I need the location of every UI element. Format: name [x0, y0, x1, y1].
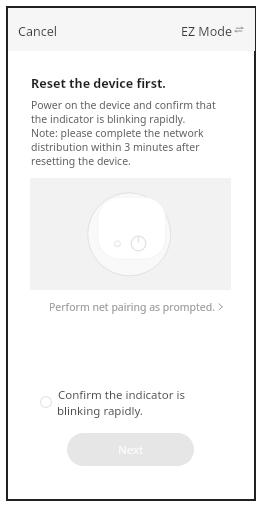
button[interactable]: Confirm the indicator is: [36, 384, 196, 420]
staticText: Power on the device and confirm that: [31, 98, 216, 112]
button[interactable]: Cancel: [8, 12, 68, 45]
staticText: Note: please complete the network: [31, 126, 204, 140]
staticText: Cancel: [18, 23, 57, 40]
staticText: Confirm the indicator is: [58, 387, 185, 403]
staticText: Next: [118, 442, 144, 458]
staticText: EZ Mode: [181, 23, 232, 40]
button[interactable]: Perform net pairing as prompted.: [40, 294, 228, 318]
button[interactable]: Next: [67, 433, 194, 466]
other: Switch pairing mode: [235, 27, 243, 32]
staticText: resetting the device.: [31, 154, 131, 168]
staticText: the indicator is blinking rapidly.: [31, 112, 186, 126]
button[interactable]: EZ Mode: [175, 12, 249, 45]
staticText: distribution within 3 minutes after: [31, 140, 200, 154]
staticText: Perform net pairing as prompted.: [49, 300, 216, 314]
staticText: blinking rapidly.: [57, 403, 143, 419]
staticText: Reset the device first.: [31, 75, 166, 92]
